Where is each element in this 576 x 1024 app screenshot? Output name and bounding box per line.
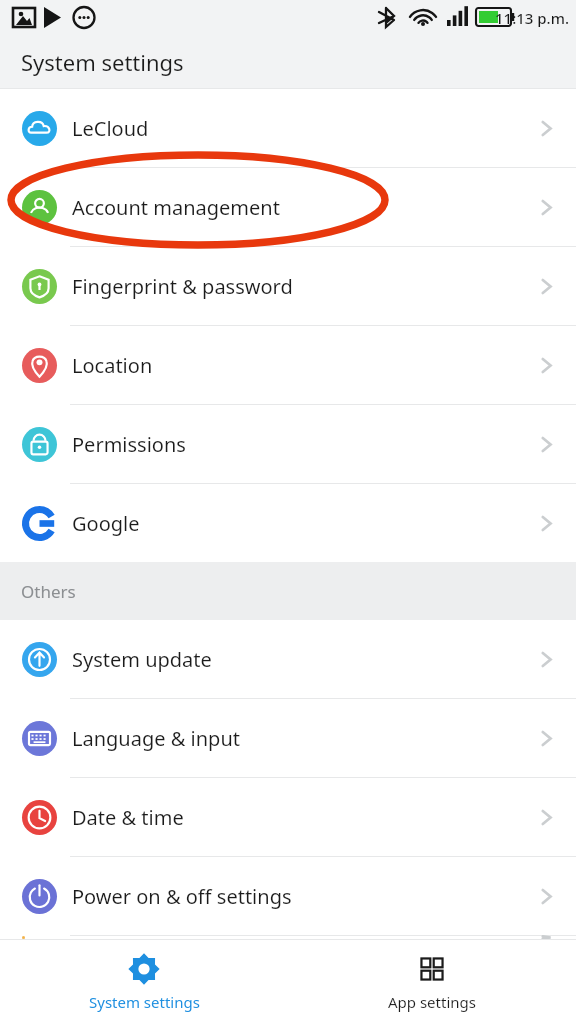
staticText: Fingerprint & password [72, 273, 293, 300]
staticText: Power on & off settings [72, 883, 292, 910]
button[interactable]: Google [0, 483, 576, 562]
staticText: Account management [72, 194, 280, 221]
staticText: 11:13 p.m. [495, 8, 569, 28]
staticText: Others [21, 580, 76, 603]
button[interactable]: Accessibility [0, 935, 576, 939]
button[interactable]: Date & time [0, 777, 576, 856]
button[interactable]: Location [0, 325, 576, 404]
button[interactable]: Power on & off settings [0, 856, 576, 935]
staticText: System update [72, 646, 212, 673]
staticText: Language & input [72, 725, 240, 752]
button[interactable]: LeCloud [0, 89, 576, 167]
staticText: Google [72, 510, 140, 537]
button[interactable]: Permissions [0, 404, 576, 483]
button[interactable]: Account management [0, 167, 576, 246]
button[interactable]: Language & input [0, 698, 576, 777]
button[interactable]: System settings [0, 940, 288, 1024]
staticText: Location [72, 352, 153, 379]
button[interactable]: System update [0, 620, 576, 698]
staticText: Date & time [72, 804, 184, 831]
staticText: App settings [388, 992, 476, 1012]
other: App settings [415, 952, 449, 986]
button[interactable]: Fingerprint & password [0, 246, 576, 325]
staticText: LeCloud [72, 115, 149, 142]
staticText: System settings [89, 992, 200, 1012]
button[interactable]: App settings [288, 940, 576, 1024]
other: System settings [127, 952, 161, 986]
staticText: System settings [21, 47, 184, 77]
staticText: Permissions [72, 431, 186, 458]
